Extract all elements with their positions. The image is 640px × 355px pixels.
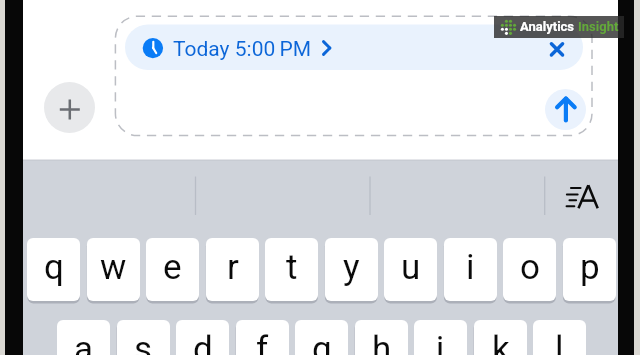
button[interactable]: q <box>27 238 80 301</box>
button[interactable]: Remove time suggestion <box>541 34 572 65</box>
staticText: q <box>44 247 64 288</box>
staticText: y <box>343 247 360 288</box>
button[interactable]: Send <box>545 89 586 130</box>
staticText: p <box>580 247 600 288</box>
staticText: k <box>492 329 510 355</box>
staticText: f <box>256 329 269 355</box>
staticText: t <box>286 247 298 288</box>
button[interactable]: f <box>236 320 289 355</box>
button[interactable]: w <box>87 238 140 301</box>
staticText: h <box>372 329 392 355</box>
button[interactable]: u <box>384 238 437 301</box>
button[interactable]: o <box>503 238 556 301</box>
staticText: Insight <box>578 19 619 34</box>
staticText: s <box>134 329 153 355</box>
button[interactable]: i <box>444 238 497 301</box>
button[interactable]: Text formatting <box>560 180 604 214</box>
staticText: d <box>193 329 213 355</box>
staticText: Analytics <box>520 19 575 34</box>
staticText: Today 5:00 PM <box>173 37 312 62</box>
staticText: j <box>436 329 445 355</box>
button[interactable]: r <box>206 238 259 301</box>
button[interactable]: t <box>265 238 318 301</box>
staticText: w <box>100 247 127 288</box>
button[interactable]: l <box>533 320 586 355</box>
button[interactable]: j <box>414 320 467 355</box>
staticText: i <box>466 247 475 288</box>
button[interactable]: k <box>474 320 527 355</box>
staticText: g <box>312 329 332 355</box>
staticText: e <box>163 247 182 288</box>
button[interactable]: e <box>146 238 199 301</box>
staticText: r <box>227 247 239 288</box>
button[interactable]: Today 5:00 PM <box>173 37 312 62</box>
button[interactable]: p <box>563 238 616 301</box>
staticText: o <box>520 247 540 288</box>
staticText: u <box>401 247 421 288</box>
button[interactable]: g <box>295 320 348 355</box>
button[interactable]: y <box>325 238 378 301</box>
staticText: a <box>74 329 94 355</box>
button[interactable]: s <box>117 320 170 355</box>
button[interactable]: h <box>355 320 408 355</box>
button[interactable]: d <box>176 320 229 355</box>
staticText: l <box>555 329 564 355</box>
button[interactable]: Add attachment <box>44 82 95 133</box>
button[interactable]: a <box>57 320 110 355</box>
